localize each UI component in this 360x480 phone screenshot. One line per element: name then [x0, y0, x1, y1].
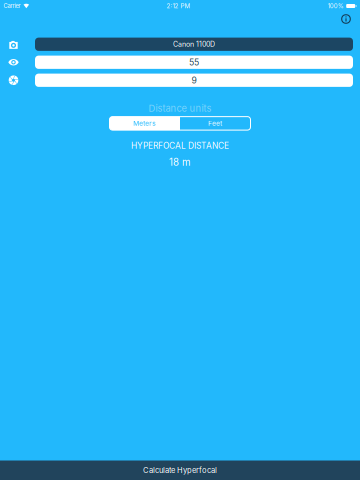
staticText: 100%: [328, 2, 344, 10]
staticText: Carrier: [3, 2, 20, 9]
button[interactable]: Calculate Hyperfocal: [0, 460, 360, 480]
staticText: 2:12 PM: [166, 2, 190, 10]
staticText: Distance units: [148, 103, 211, 114]
button[interactable]: Meters: [109, 117, 180, 130]
staticText: 55: [189, 57, 199, 67]
button[interactable]: 9: [35, 74, 353, 87]
button[interactable]: Feet: [180, 117, 250, 130]
button[interactable]: Canon 1100D: [35, 38, 353, 51]
staticText: Calculate Hyperfocal: [143, 466, 217, 475]
staticText: 9: [191, 75, 196, 85]
button[interactable]: Info: [340, 13, 351, 24]
staticText: HYPERFOCAL DISTANCE: [131, 140, 229, 151]
button[interactable]: 55: [35, 56, 353, 69]
staticText: Feet: [208, 119, 222, 127]
staticText: Meters: [133, 119, 156, 127]
staticText: 18 m: [169, 156, 191, 168]
staticText: Canon 1100D: [173, 40, 215, 48]
